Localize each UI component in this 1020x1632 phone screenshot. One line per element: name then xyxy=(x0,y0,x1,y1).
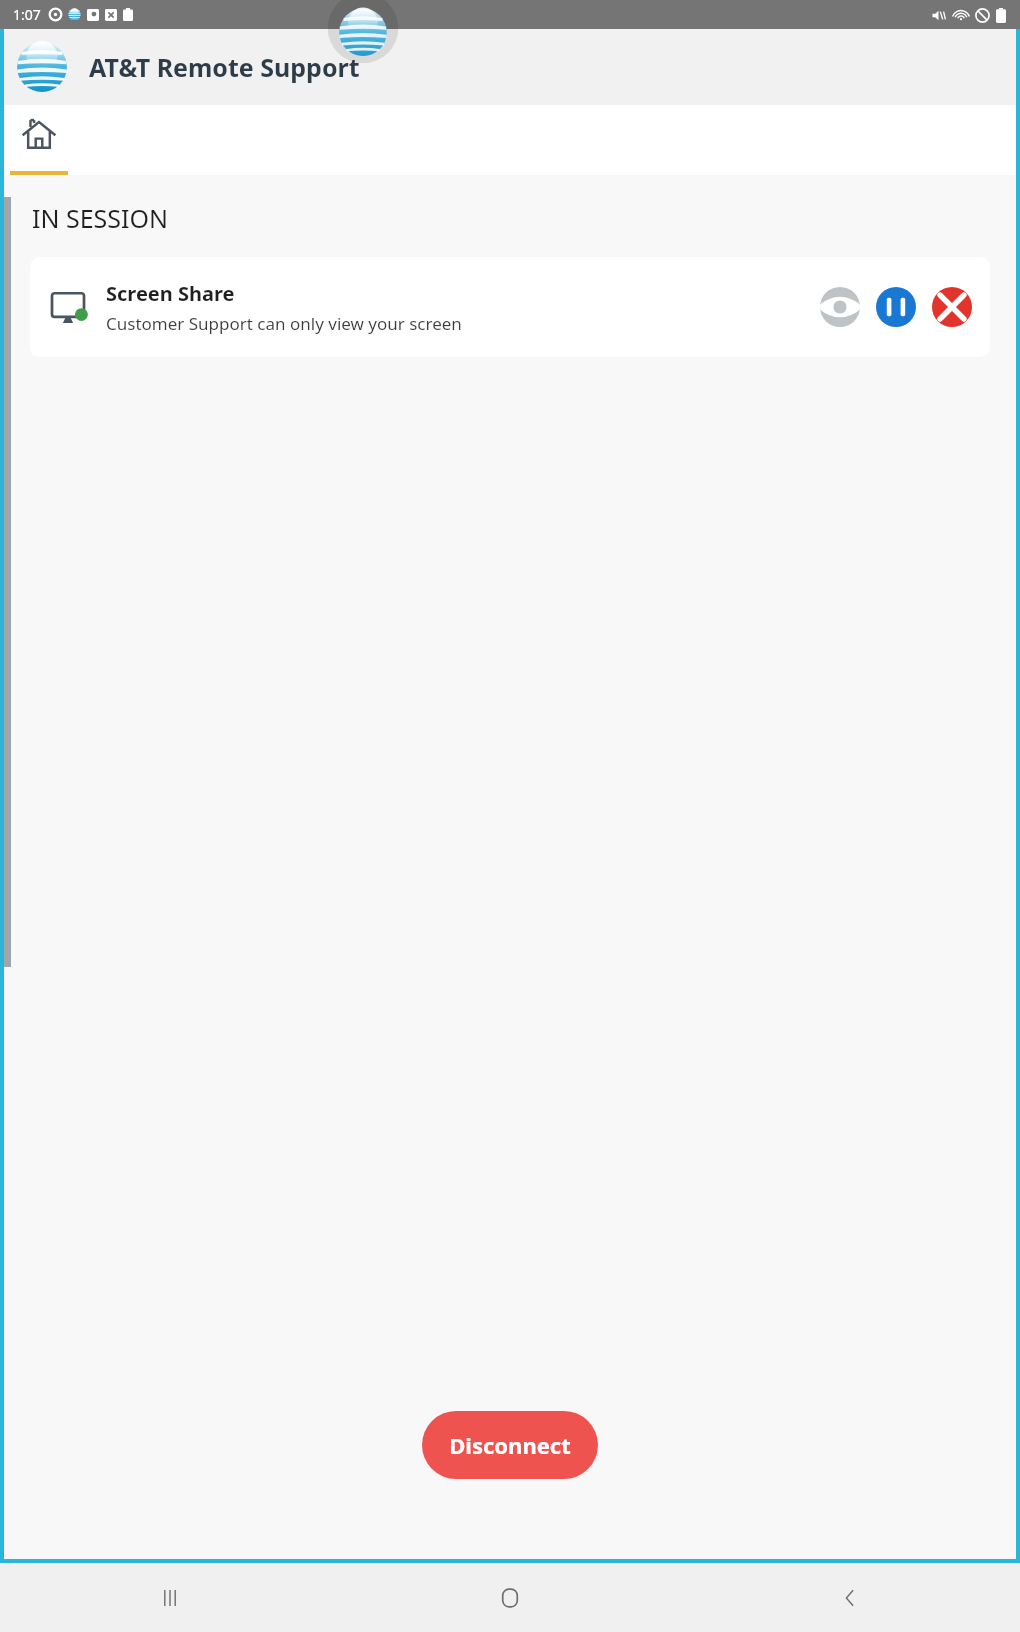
button[interactable]: Home xyxy=(4,105,74,175)
staticText: IN SESSION xyxy=(32,201,169,235)
button[interactable]: Back xyxy=(680,1563,1020,1632)
button[interactable]: Stop xyxy=(932,287,972,327)
button[interactable]: Pause xyxy=(876,287,916,327)
button[interactable]: Home xyxy=(340,1563,680,1632)
button[interactable]: Recent apps xyxy=(0,1563,340,1632)
staticText: 1:07 xyxy=(13,5,41,24)
staticText: AT&T Remote Support xyxy=(89,50,360,84)
staticText: Disconnect xyxy=(449,1430,571,1460)
staticText: Screen Share xyxy=(106,280,235,307)
staticText: Customer Support can only view your scre… xyxy=(106,312,462,335)
button[interactable]: Disconnect xyxy=(422,1411,598,1479)
button[interactable]: Screen Share xyxy=(30,257,990,357)
button[interactable]: View xyxy=(820,287,860,327)
